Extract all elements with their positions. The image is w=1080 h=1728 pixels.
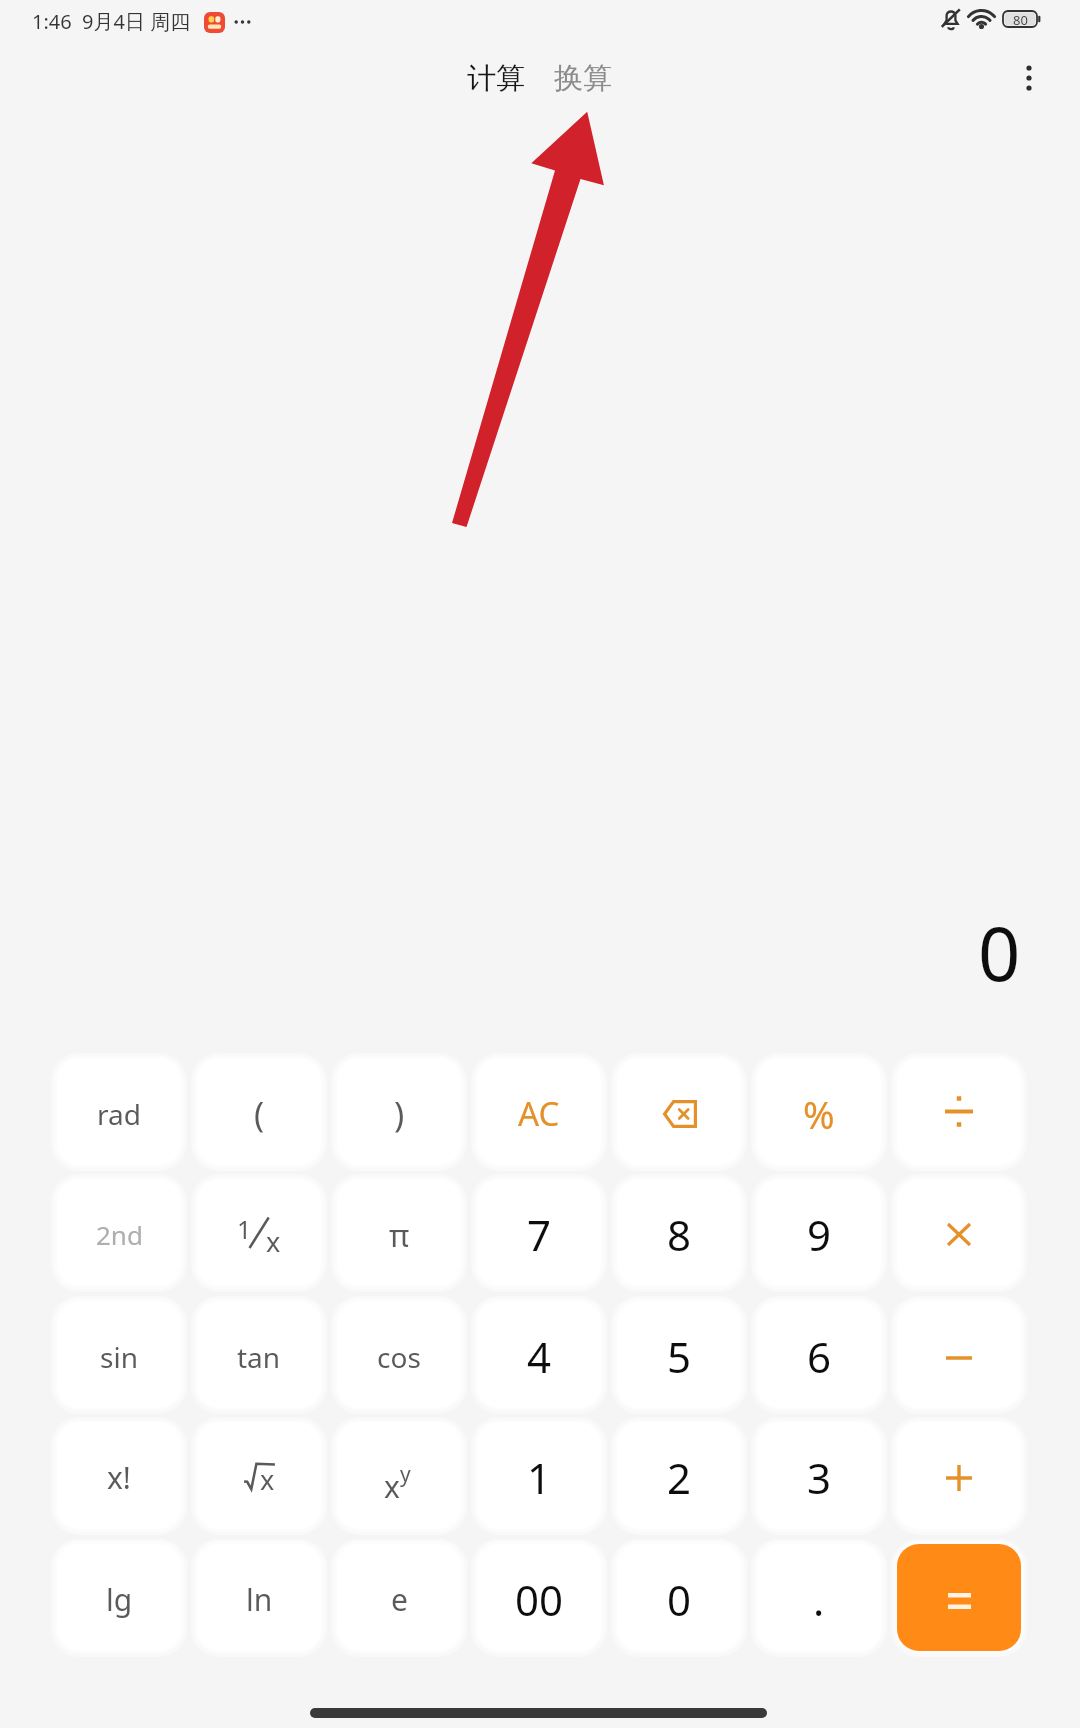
staticText: cos bbox=[377, 1338, 421, 1376]
button[interactable]: 7 bbox=[477, 1179, 601, 1286]
staticText: 4 bbox=[527, 1328, 552, 1385]
staticText: AC bbox=[518, 1091, 560, 1136]
staticText: 6 bbox=[807, 1328, 832, 1385]
button[interactable]: lg bbox=[57, 1544, 181, 1651]
staticText: y bbox=[400, 1460, 411, 1489]
staticText: 8 bbox=[667, 1206, 692, 1263]
button[interactable]: Multiply bbox=[897, 1179, 1021, 1286]
staticText: 0 bbox=[978, 902, 1021, 1003]
button[interactable]: rad bbox=[57, 1058, 181, 1165]
staticText: 计算 bbox=[467, 60, 525, 97]
staticText: sin bbox=[100, 1338, 138, 1376]
staticText: 00 bbox=[515, 1571, 564, 1628]
staticText: rad bbox=[97, 1095, 141, 1133]
staticText: . bbox=[813, 1571, 825, 1628]
button[interactable]: Backspace bbox=[617, 1058, 741, 1165]
button[interactable]: 1 bbox=[477, 1422, 601, 1529]
button[interactable]: sin bbox=[57, 1301, 181, 1408]
staticText: ln bbox=[246, 1579, 273, 1620]
staticText: 1 bbox=[237, 1212, 252, 1246]
staticText: 5 bbox=[667, 1328, 692, 1385]
staticText: x! bbox=[107, 1457, 131, 1498]
staticText: 7 bbox=[527, 1206, 552, 1263]
staticText: lg bbox=[106, 1579, 133, 1620]
button[interactable]: More options bbox=[1005, 48, 1053, 108]
button[interactable]: 4 bbox=[477, 1301, 601, 1408]
button[interactable]: 换算 bbox=[540, 48, 626, 108]
staticText: e bbox=[391, 1579, 408, 1620]
button[interactable]: 计算 bbox=[453, 48, 539, 108]
button[interactable]: 6 bbox=[757, 1301, 881, 1408]
button[interactable]: 0 bbox=[617, 1544, 741, 1651]
button[interactable]: Divide bbox=[897, 1058, 1021, 1165]
staticText: x bbox=[266, 1223, 281, 1260]
button[interactable]: 2nd bbox=[57, 1179, 181, 1286]
staticText: 1 bbox=[527, 1449, 552, 1506]
button[interactable]: 3 bbox=[757, 1422, 881, 1529]
staticText: 0 bbox=[667, 1571, 692, 1628]
staticText: tan bbox=[237, 1338, 281, 1376]
button[interactable]: tan bbox=[197, 1301, 321, 1408]
button[interactable]: Equals bbox=[897, 1544, 1021, 1651]
staticText: 2nd bbox=[96, 1217, 143, 1252]
button[interactable]: . bbox=[757, 1544, 881, 1651]
staticText: 2 bbox=[667, 1449, 692, 1506]
button[interactable]: One over x bbox=[197, 1179, 321, 1286]
button[interactable]: 9 bbox=[757, 1179, 881, 1286]
button[interactable]: 00 bbox=[477, 1544, 601, 1651]
staticText: 换算 bbox=[554, 60, 612, 97]
staticText: 1:46 9月4日 周四 bbox=[32, 8, 191, 35]
button[interactable]: 2 bbox=[617, 1422, 741, 1529]
staticText: 80 bbox=[1013, 11, 1028, 27]
button[interactable]: AC bbox=[477, 1058, 601, 1165]
staticText: ( bbox=[254, 1091, 265, 1137]
button[interactable]: 8 bbox=[617, 1179, 741, 1286]
button[interactable]: cos bbox=[337, 1301, 461, 1408]
button[interactable]: x to the power y bbox=[337, 1422, 461, 1529]
button[interactable]: 5 bbox=[617, 1301, 741, 1408]
button[interactable]: π bbox=[337, 1179, 461, 1286]
staticText: x bbox=[384, 1466, 400, 1507]
staticText: π bbox=[389, 1214, 410, 1256]
button[interactable]: ( bbox=[197, 1058, 321, 1165]
staticText: 3 bbox=[807, 1449, 832, 1506]
staticText: % bbox=[803, 1088, 835, 1140]
button[interactable]: Subtract bbox=[897, 1301, 1021, 1408]
button[interactable]: % bbox=[757, 1058, 881, 1165]
staticText: ) bbox=[394, 1091, 405, 1137]
button[interactable]: Square root of x bbox=[197, 1422, 321, 1529]
button[interactable]: e bbox=[337, 1544, 461, 1651]
button[interactable]: x! bbox=[57, 1422, 181, 1529]
button[interactable]: Add bbox=[897, 1422, 1021, 1529]
button[interactable]: ln bbox=[197, 1544, 321, 1651]
button[interactable]: ) bbox=[337, 1058, 461, 1165]
staticText: x bbox=[260, 1461, 275, 1498]
staticText: 9 bbox=[807, 1206, 832, 1263]
